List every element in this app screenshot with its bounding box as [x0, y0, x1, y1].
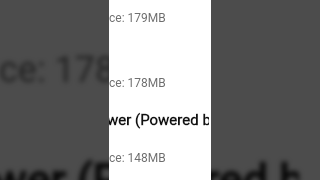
staticText: wer (Powered b	[109, 111, 209, 129]
staticText: ce: 148MB	[109, 151, 166, 165]
staticText: ce: 178MB	[0, 49, 170, 91]
staticText: ce: 179MB	[109, 11, 166, 25]
staticText: ce: 178MB	[109, 76, 166, 90]
staticText: wer (Powered b	[0, 154, 299, 180]
